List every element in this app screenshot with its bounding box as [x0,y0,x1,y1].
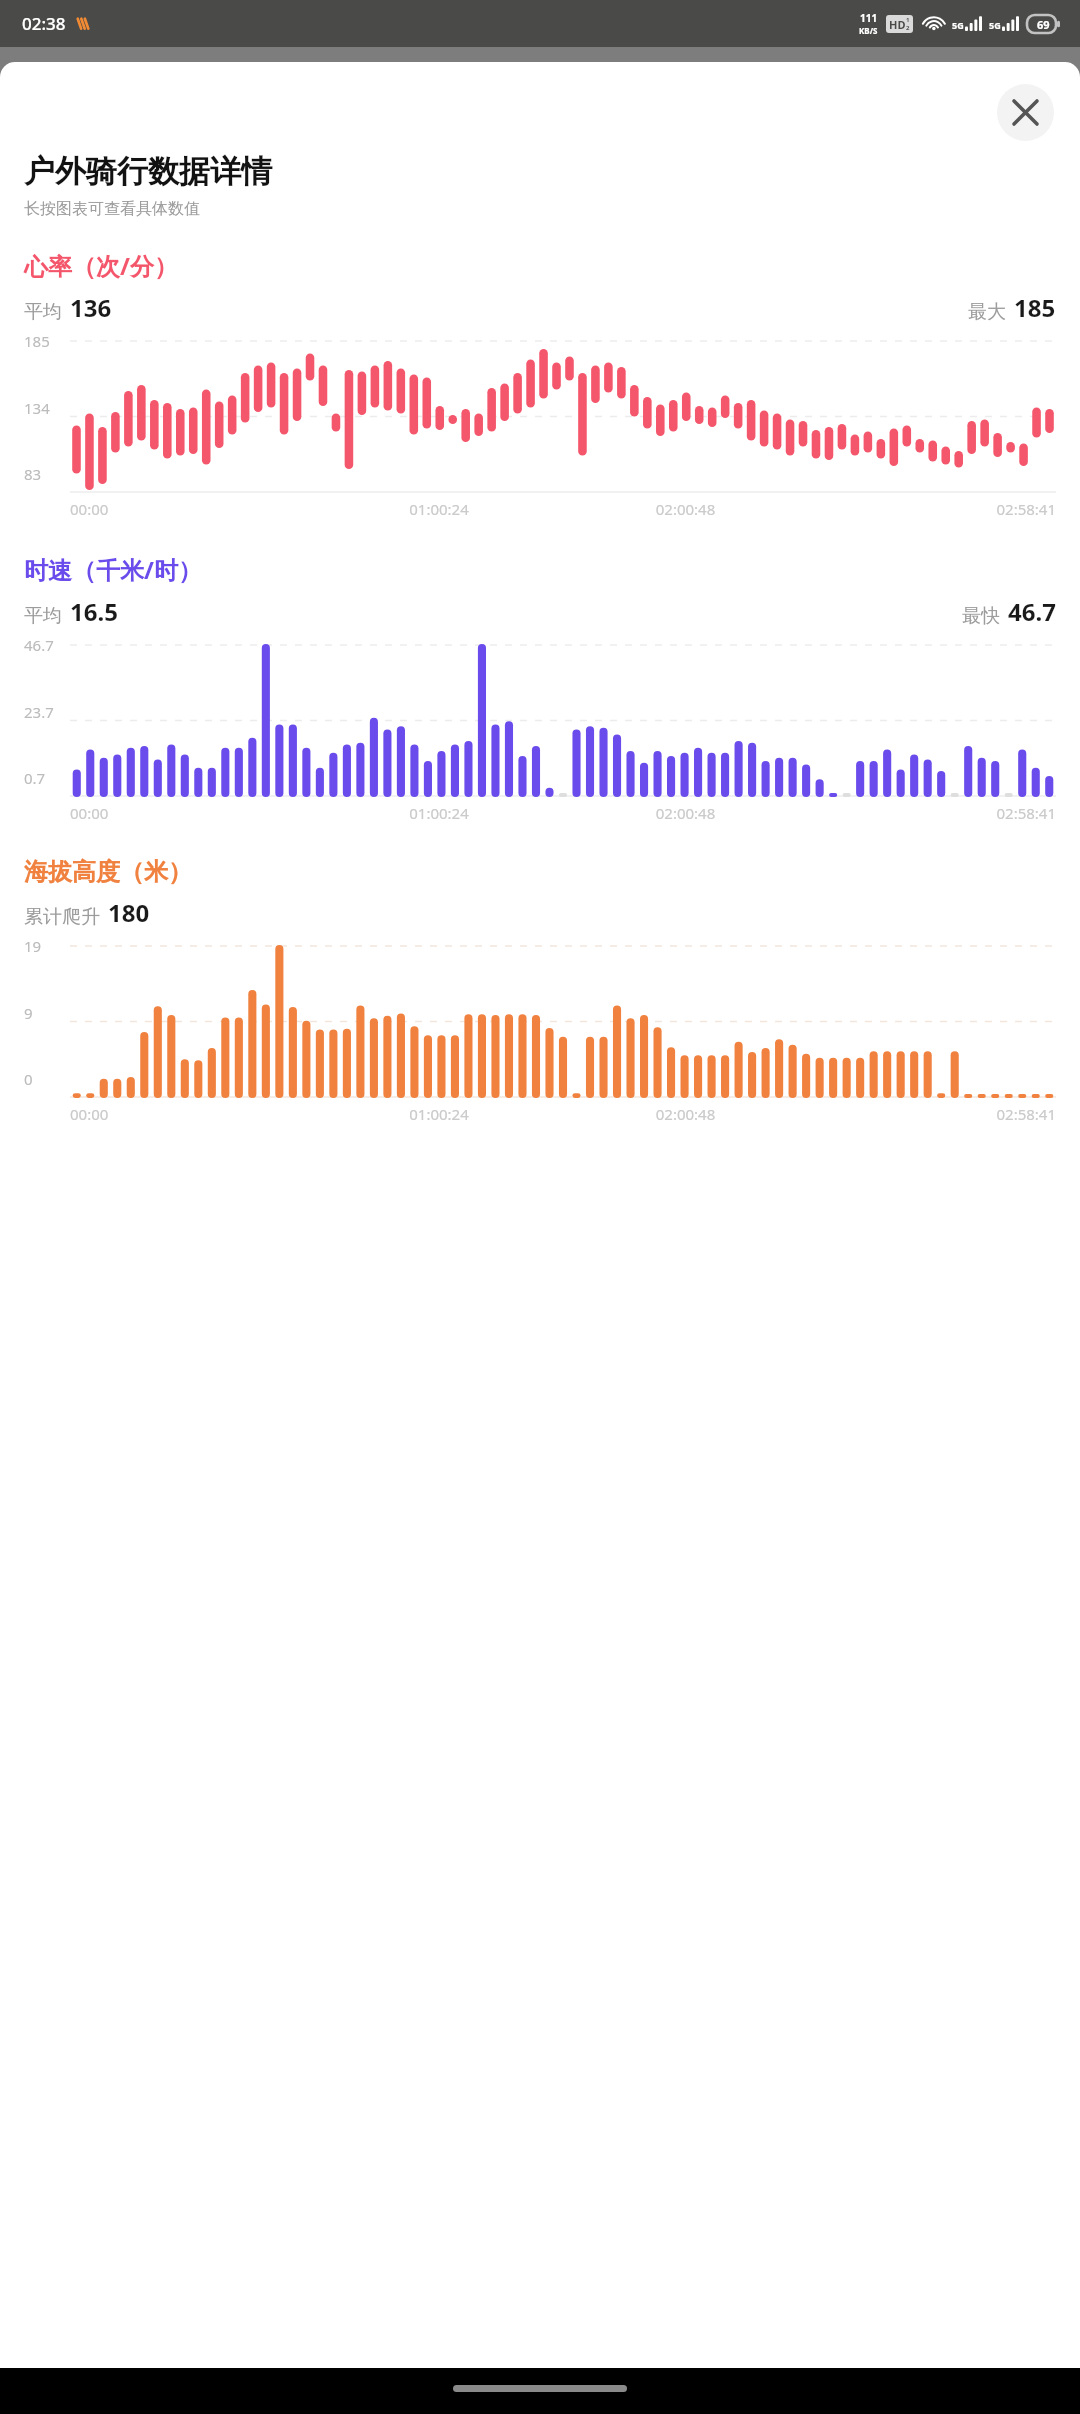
button[interactable]: 海拔高度（米） [24,857,192,887]
staticText: 69 [1037,17,1050,32]
staticText: 16.5 [70,595,118,628]
staticText: 9 [24,1003,33,1023]
staticText: 185 [1014,291,1056,324]
staticText: 时速（千米/时） [24,553,202,586]
staticText: 海拔高度（米） [24,857,192,887]
staticText: 46.7 [24,635,54,655]
staticText: 最大 [968,300,1006,324]
staticText: KB/S [859,25,878,36]
staticText: 平均 [24,604,62,628]
staticText: 00:00 [70,803,316,823]
staticText: 19 [24,936,42,956]
staticText: 平均 [24,300,62,324]
staticText: 5G [989,19,1001,31]
staticText: 5G [952,19,964,31]
staticText: 01:00:24 [316,499,562,519]
staticText: 最快 [962,604,1000,628]
staticText: 2 [906,24,910,32]
staticText: 111 [860,11,878,25]
staticText: 02:58:41 [809,1104,1056,1124]
staticText: 23.7 [24,702,54,722]
staticText: 心率（次/分） [24,249,178,282]
button[interactable]: Close [997,84,1054,141]
staticText: 00:00 [70,1104,316,1124]
staticText: 02:38 [22,12,66,35]
staticText: 01:00:24 [316,1104,562,1124]
staticText: 02:58:41 [809,803,1056,823]
staticText: 180 [108,896,150,929]
staticText: 134 [24,398,50,418]
staticText: 户外骑行数据详情 [24,152,272,191]
staticText: 02:00:48 [562,803,809,823]
staticText: 0.7 [24,768,46,788]
staticText: 累计爬升 [24,905,100,929]
staticText: 02:00:48 [562,499,809,519]
staticText: 136 [70,291,112,324]
staticText: 46.7 [1008,595,1056,628]
staticText: 01:00:24 [316,803,562,823]
button[interactable]: 时速（千米/时） [24,553,202,586]
staticText: 长按图表可查看具体数值 [24,199,200,219]
staticText: 00:00 [70,499,316,519]
staticText: HD [889,17,906,32]
staticText: 02:00:48 [562,1104,809,1124]
staticText: 185 [24,331,50,351]
staticText: 02:58:41 [809,499,1056,519]
button[interactable]: 心率（次/分） [24,249,178,282]
staticText: 0 [24,1069,33,1089]
staticText: 83 [24,464,42,484]
staticText: 1 [906,16,910,24]
